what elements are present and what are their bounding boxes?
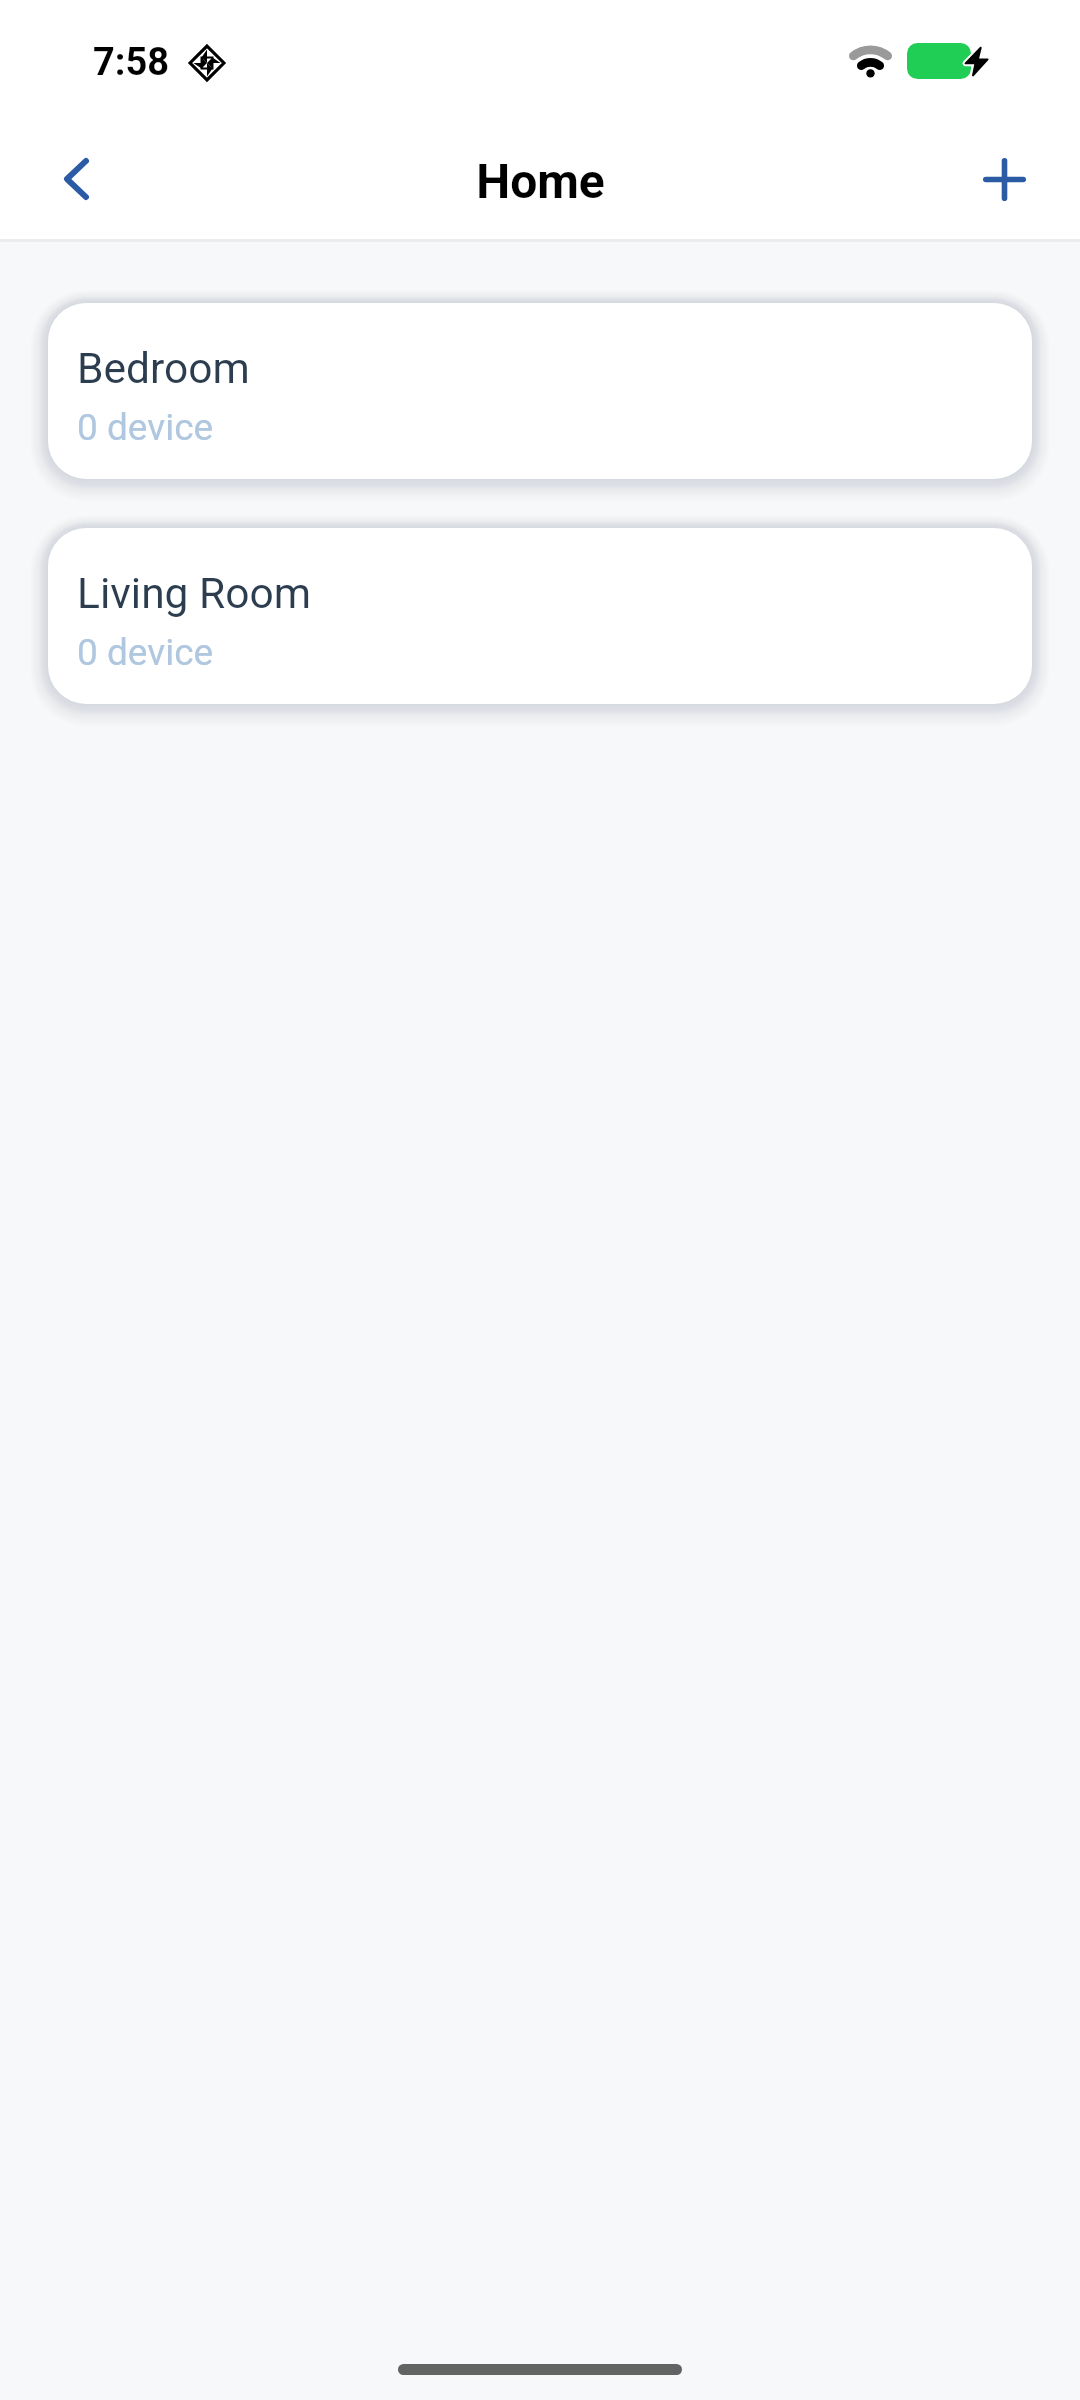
- staticText: Living Room: [77, 569, 311, 619]
- staticText: Home: [476, 153, 605, 209]
- staticText: 7:58: [93, 40, 170, 85]
- button[interactable]: Living Room: [48, 528, 1032, 704]
- button[interactable]: Back: [21, 124, 131, 234]
- staticText: 0 device: [77, 406, 214, 449]
- staticText: 0 device: [77, 631, 214, 674]
- button[interactable]: Add room: [949, 124, 1059, 234]
- button[interactable]: Bedroom: [48, 303, 1032, 479]
- staticText: Bedroom: [77, 344, 250, 394]
